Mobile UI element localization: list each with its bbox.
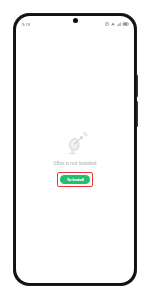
staticText: 9:18 xyxy=(22,22,30,27)
other: Wi-Fi xyxy=(111,22,115,26)
staticText: GBox is not installed xyxy=(16,160,134,166)
other: Status icon xyxy=(105,22,109,26)
staticText: To install xyxy=(67,177,84,182)
other: Battery xyxy=(123,22,129,26)
button[interactable]: To install xyxy=(60,175,90,184)
other: Mobile signal xyxy=(117,22,121,26)
